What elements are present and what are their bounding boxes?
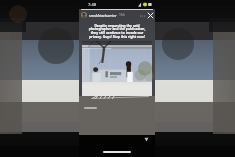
staticText: smokhtarbarrier [89,13,117,18]
staticText: 7:48 [88,2,96,7]
button[interactable]: Share [144,137,149,142]
staticText: 16h [119,13,125,17]
button[interactable]: Close [146,11,154,19]
button[interactable]: More options [139,12,146,19]
button[interactable]: smokhtarbarrier [81,11,154,19]
staticText: Despite requesting the said photographer… [82,23,152,39]
